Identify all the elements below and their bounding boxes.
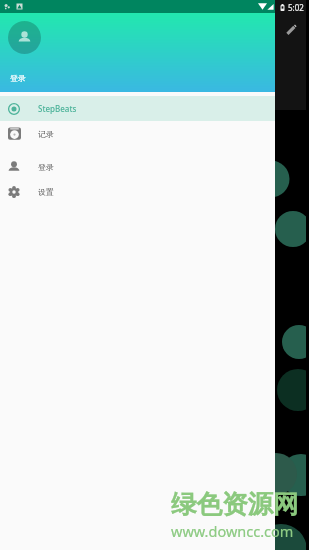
staticText: 设置 — [38, 187, 54, 197]
button[interactable]: 设置 — [0, 179, 275, 204]
staticText: 登录 — [38, 162, 54, 172]
staticText: 绿色资源网 — [171, 488, 299, 520]
button[interactable]: Avatar — [8, 21, 41, 54]
staticText: www.downcc.com — [171, 521, 294, 541]
button[interactable]: 记录 — [0, 121, 275, 146]
staticText: 5:02 — [288, 2, 304, 13]
button[interactable]: 登录 — [0, 154, 275, 179]
staticText: StepBeats — [38, 103, 77, 114]
button[interactable]: StepBeats — [0, 96, 275, 121]
staticText: 记录 — [38, 129, 54, 139]
staticText: 登录 — [10, 73, 26, 83]
button[interactable]: Edit — [282, 21, 300, 39]
